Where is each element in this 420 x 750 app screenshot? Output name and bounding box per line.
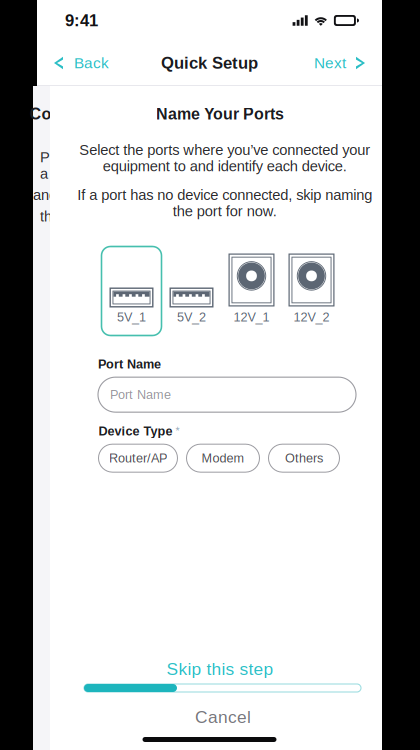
staticText: Name Your Ports xyxy=(156,105,284,123)
staticText: and we xyxy=(33,187,84,203)
staticText: 12V_2 xyxy=(293,310,329,324)
staticText: the ap xyxy=(40,208,84,225)
button[interactable]: Router/AP xyxy=(98,444,177,472)
staticText: 5V_2 xyxy=(177,310,206,324)
button[interactable]: 5V_2 xyxy=(161,246,221,335)
button[interactable]: 12V_1 xyxy=(221,246,281,335)
staticText: 5V_1 xyxy=(117,310,146,324)
staticText: 9:41 xyxy=(65,11,98,30)
staticText: Next xyxy=(314,54,346,71)
staticText: Plug in a xyxy=(40,149,84,182)
staticText: Port Name xyxy=(98,357,161,371)
staticText: Back xyxy=(74,54,109,71)
staticText: Connect xyxy=(29,105,94,123)
button[interactable]: Back xyxy=(37,43,121,83)
staticText: Cancel xyxy=(195,707,251,727)
staticText: Port Name xyxy=(110,388,171,402)
button[interactable]: Cancel xyxy=(50,706,382,728)
staticText: Skip this step xyxy=(166,659,273,679)
button[interactable]: Modem xyxy=(186,444,259,472)
staticText: 12V_1 xyxy=(233,310,269,324)
staticText: If a port has no device connected, skip … xyxy=(77,187,372,219)
button[interactable]: Next xyxy=(302,43,382,83)
staticText: Modem xyxy=(201,451,244,465)
staticText: Router/AP xyxy=(109,451,167,465)
button[interactable]: 12V_2 xyxy=(281,246,341,335)
button[interactable]: Port Name xyxy=(98,377,356,412)
staticText: Others xyxy=(285,451,323,465)
staticText: * xyxy=(172,425,179,437)
staticText: Device Type xyxy=(98,424,172,438)
button[interactable]: Skip this step xyxy=(50,658,382,680)
button[interactable]: 5V_1 xyxy=(101,246,161,335)
button[interactable]: Others xyxy=(268,444,339,472)
staticText: Quick Setup xyxy=(161,54,258,72)
staticText: Select the ports where you’ve connected … xyxy=(79,142,370,174)
